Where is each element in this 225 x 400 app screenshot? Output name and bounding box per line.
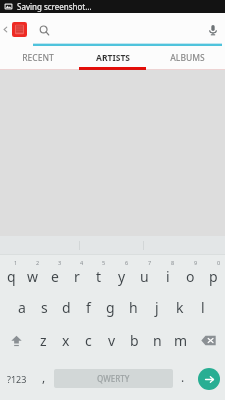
staticText: 1 xyxy=(14,259,18,266)
button[interactable]: Voice search xyxy=(201,18,225,42)
button[interactable]: QWERTY xyxy=(54,369,173,388)
staticText: j xyxy=(155,298,159,317)
staticText: m xyxy=(174,331,188,350)
button[interactable]: ALBUMS xyxy=(150,46,225,70)
staticText: y xyxy=(118,267,126,286)
staticText: b xyxy=(130,331,139,350)
staticText: ARTISTS xyxy=(96,52,130,64)
button[interactable]: 4 xyxy=(66,255,88,291)
staticText: r xyxy=(74,267,80,286)
staticText: 0 xyxy=(217,259,221,266)
button[interactable]: 0 xyxy=(202,255,225,291)
staticText: x xyxy=(62,331,70,350)
button[interactable]: v xyxy=(100,324,123,357)
staticText: h xyxy=(129,298,138,317)
staticText: 2 xyxy=(36,259,40,266)
staticText: i xyxy=(166,267,170,286)
button[interactable]: 8 xyxy=(156,255,179,291)
staticText: 5 xyxy=(102,259,106,266)
staticText: Saving screenshot… xyxy=(17,1,92,12)
button[interactable]: ARTISTS xyxy=(75,46,150,70)
staticText: n xyxy=(153,331,162,350)
button[interactable]: 5 xyxy=(88,255,110,291)
button[interactable]: , xyxy=(34,357,54,400)
button[interactable]: 6 xyxy=(110,255,133,291)
staticText: ALBUMS xyxy=(170,52,205,64)
button[interactable]: . xyxy=(173,357,193,400)
button[interactable]: s xyxy=(33,291,55,324)
staticText: q xyxy=(7,267,16,286)
staticText: o xyxy=(186,267,195,286)
staticText: e xyxy=(51,267,59,286)
button[interactable]: ?123 xyxy=(0,357,34,400)
button[interactable]: m xyxy=(169,324,192,357)
button[interactable]: d xyxy=(55,291,77,324)
button[interactable]: 9 xyxy=(179,255,202,291)
button[interactable]: c xyxy=(77,324,100,357)
button[interactable]: Enter xyxy=(193,357,225,400)
button[interactable]: x xyxy=(54,324,77,357)
staticText: u xyxy=(140,267,149,286)
staticText: s xyxy=(41,298,48,317)
button[interactable]: g xyxy=(99,291,122,324)
button[interactable]: 3 xyxy=(44,255,66,291)
button[interactable]: App icon xyxy=(11,21,28,38)
staticText: f xyxy=(86,298,91,317)
staticText: , xyxy=(42,369,46,385)
staticText: k xyxy=(176,298,184,317)
staticText: a xyxy=(18,298,26,317)
staticText: 8 xyxy=(171,259,175,266)
staticText: z xyxy=(40,331,47,350)
button[interactable]: b xyxy=(123,324,146,357)
button[interactable]: Shift xyxy=(0,324,32,357)
staticText: p xyxy=(209,267,218,286)
staticText: c xyxy=(85,331,92,350)
staticText: . xyxy=(181,369,185,385)
staticText: 9 xyxy=(194,259,198,266)
staticText: g xyxy=(106,298,115,317)
staticText: QWERTY xyxy=(97,373,130,384)
staticText: 4 xyxy=(80,259,84,266)
staticText: t xyxy=(96,267,102,286)
button[interactable]: l xyxy=(191,291,214,324)
staticText: RECENT xyxy=(22,52,54,64)
button[interactable]: j xyxy=(145,291,168,324)
button[interactable]: n xyxy=(146,324,169,357)
button[interactable]: 7 xyxy=(133,255,156,291)
button[interactable]: f xyxy=(77,291,99,324)
staticText: 3 xyxy=(58,259,62,266)
staticText: ?123 xyxy=(7,373,27,385)
button[interactable]: a xyxy=(11,291,33,324)
staticText: l xyxy=(201,298,205,317)
button[interactable]: k xyxy=(168,291,191,324)
staticText: 7 xyxy=(148,259,152,266)
button[interactable]: RECENT xyxy=(0,46,75,70)
button[interactable]: 1 xyxy=(0,255,22,291)
button[interactable]: Back xyxy=(0,13,11,46)
button[interactable]: Search xyxy=(34,20,54,40)
button[interactable]: h xyxy=(122,291,145,324)
button[interactable]: 2 xyxy=(22,255,44,291)
button[interactable]: Backspace xyxy=(192,324,225,357)
staticText: v xyxy=(108,331,116,350)
staticText: 6 xyxy=(125,259,129,266)
staticText: d xyxy=(62,298,71,317)
button[interactable]: z xyxy=(32,324,54,357)
staticText: w xyxy=(27,267,39,286)
